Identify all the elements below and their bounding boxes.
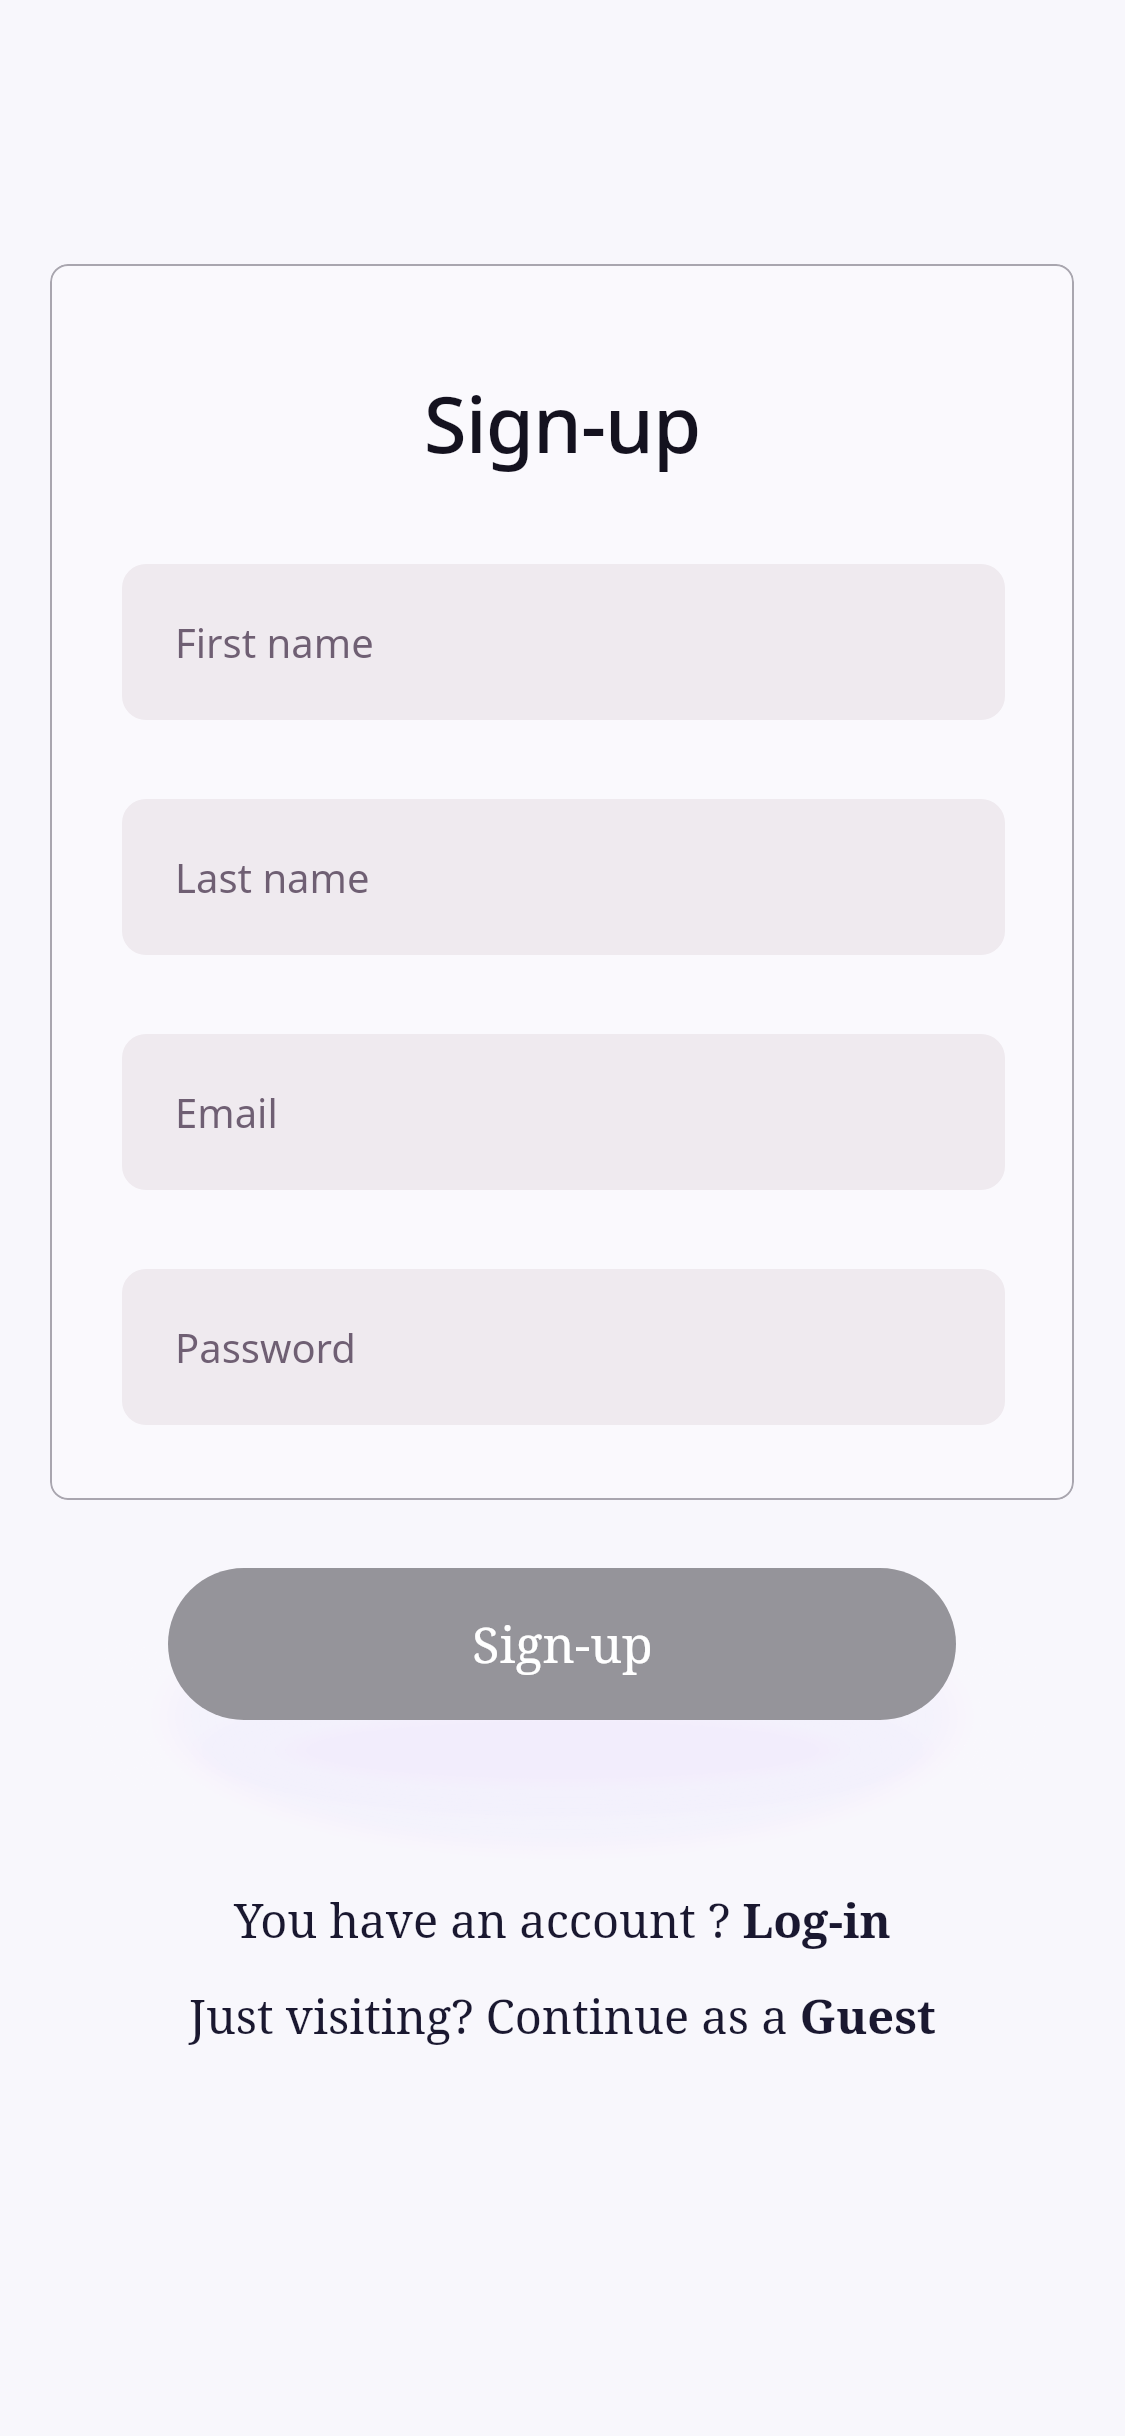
staticText: Password — [175, 1320, 356, 1374]
button[interactable]: Last name — [122, 799, 1005, 955]
staticText: First name — [175, 615, 374, 669]
staticText: You have an account ? Log-in — [0, 1888, 1125, 1952]
staticText: Sign-up — [50, 370, 1074, 476]
staticText: Sign-up — [472, 1610, 653, 1678]
button[interactable]: First name — [122, 564, 1005, 720]
button[interactable]: Password — [122, 1269, 1005, 1425]
button[interactable]: You have an account ? Log-in — [0, 1888, 1125, 1952]
staticText: Just visiting? Continue as a Guest — [0, 1984, 1125, 2048]
staticText: Email — [175, 1085, 278, 1139]
staticText: Last name — [175, 850, 370, 904]
button[interactable]: Sign-up — [168, 1568, 956, 1720]
button[interactable]: Email — [122, 1034, 1005, 1190]
button[interactable]: Just visiting? Continue as a Guest — [0, 1984, 1125, 2048]
